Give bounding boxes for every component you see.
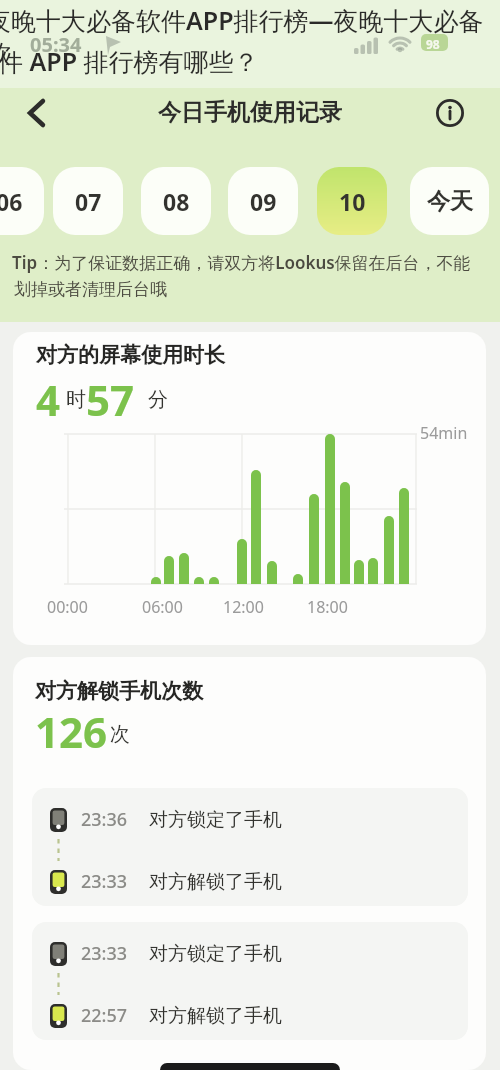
button[interactable] — [20, 96, 56, 132]
staticText: 分 — [148, 387, 168, 412]
staticText: 今日手机使用记录 — [158, 98, 342, 127]
staticText: Tip：为了保证数据正确，请双方将Lookus保留在后台，不能 — [12, 251, 471, 274]
staticText: 对方解锁了手机 — [149, 870, 282, 894]
staticText: 23:36 — [81, 807, 128, 832]
button[interactable]: 08 — [141, 167, 211, 235]
staticText: 12:00 — [223, 596, 264, 618]
staticText: 时 — [66, 387, 86, 412]
staticText: 10 — [339, 186, 366, 217]
button[interactable]: 23:36 — [32, 803, 468, 836]
button[interactable]: 23:33 — [32, 865, 468, 898]
staticText: 54min — [420, 422, 468, 444]
staticText: 98 — [426, 36, 440, 52]
staticText: 06:00 — [142, 596, 183, 618]
staticText: 对方解锁手机次数 — [35, 678, 203, 704]
staticText: 23:33 — [81, 941, 128, 966]
staticText: 57 — [86, 371, 135, 428]
staticText: 夜晚十大必备软件APP排行榜—夜晚十大必备软 — [0, 3, 486, 71]
staticText: 126 — [35, 703, 108, 760]
staticText: 对方解锁了手机 — [149, 1004, 282, 1028]
button[interactable]: 09 — [228, 167, 298, 235]
staticText: 4 — [36, 371, 61, 428]
staticText: 对方锁定了手机 — [149, 942, 282, 966]
staticText: 00:00 — [47, 596, 88, 618]
staticText: 08 — [163, 186, 190, 217]
button[interactable] — [436, 99, 464, 127]
staticText: 划掉或者清理后台哦 — [14, 279, 167, 300]
button[interactable]: 10 — [317, 167, 387, 235]
button[interactable]: 22:57 — [32, 999, 468, 1032]
staticText: 对方锁定了手机 — [149, 808, 282, 832]
staticText: 23:33 — [81, 869, 128, 894]
staticText: 次 — [110, 722, 130, 747]
button[interactable]: 今天 — [410, 167, 489, 235]
staticText: 今天 — [427, 187, 473, 216]
staticText: 07 — [75, 186, 102, 217]
button[interactable]: 07 — [53, 167, 123, 235]
staticText: 06 — [0, 186, 23, 217]
staticText: 件 APP 排行榜有哪些？ — [0, 44, 259, 78]
staticText: 05:34 — [30, 31, 82, 58]
staticText: 18:00 — [307, 596, 348, 618]
staticText: 对方的屏幕使用时长 — [36, 342, 225, 368]
staticText: 22:57 — [81, 1003, 128, 1028]
staticText: 09 — [250, 186, 277, 217]
button[interactable]: 06 — [0, 167, 44, 235]
button[interactable]: 23:33 — [32, 937, 468, 970]
